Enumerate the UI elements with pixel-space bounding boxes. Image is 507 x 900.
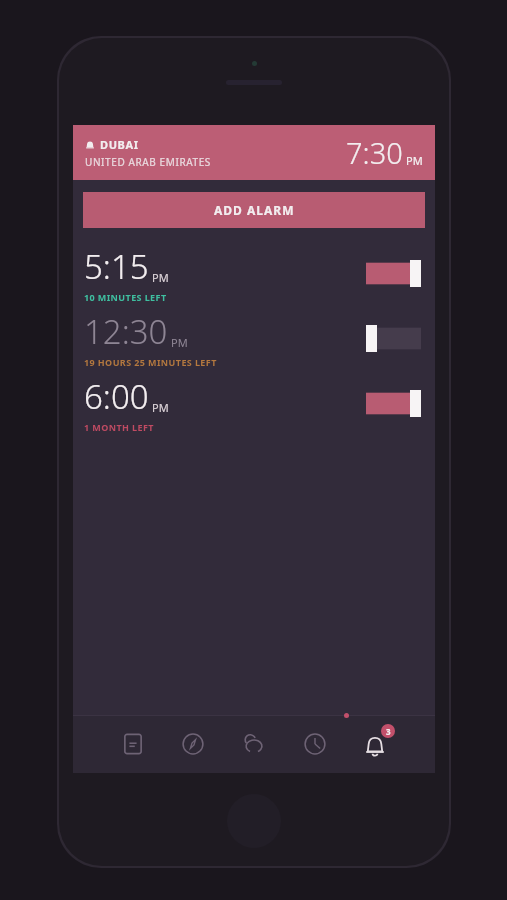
staticText: PM	[152, 400, 169, 415]
staticText: 19 HOURS 25 MINUTES LEFT	[84, 356, 217, 368]
staticText: 1 MONTH LEFT	[84, 421, 154, 433]
button[interactable]: DUBAI	[73, 125, 435, 180]
staticText: 10 MINUTES LEFT	[84, 291, 167, 303]
button[interactable]: Alarms, 3 new	[356, 725, 394, 763]
button[interactable]: ADD ALARM	[83, 192, 425, 228]
button[interactable]: Alarm on	[366, 260, 421, 287]
button[interactable]: Alarm off	[366, 325, 421, 352]
button[interactable]: Clock	[296, 725, 334, 763]
staticText: DUBAI	[100, 137, 139, 152]
button[interactable]: Alarm on	[366, 390, 421, 417]
staticText: 5:15	[84, 244, 149, 289]
staticText: PM	[171, 335, 188, 350]
staticText: 3	[386, 726, 391, 737]
button[interactable]: Notes	[114, 725, 152, 763]
button[interactable]: Weather	[235, 725, 273, 763]
button[interactable]: 6:00	[73, 371, 435, 436]
staticText: UNITED ARAB EMIRATES	[85, 155, 211, 169]
button[interactable]: Compass	[174, 725, 212, 763]
staticText: 6:00	[84, 374, 149, 419]
button[interactable]: 12:30	[73, 306, 435, 371]
staticText: 7:30	[346, 133, 403, 172]
staticText: PM	[406, 153, 423, 168]
staticText: ADD ALARM	[214, 202, 295, 218]
staticText: PM	[152, 270, 169, 285]
staticText: 12:30	[84, 309, 168, 354]
button[interactable]: 5:15	[73, 241, 435, 306]
